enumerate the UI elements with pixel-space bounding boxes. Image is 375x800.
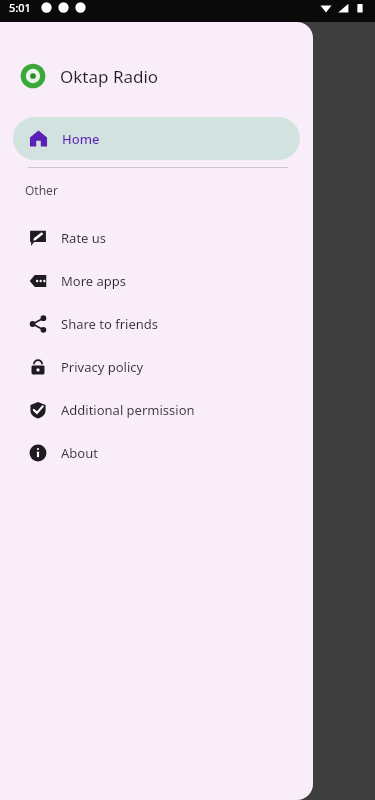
staticText: Oktap Radio <box>60 65 159 88</box>
button[interactable]: Privacy policy <box>0 345 313 388</box>
staticText: Home <box>62 130 100 148</box>
button[interactable]: About <box>0 431 313 474</box>
button[interactable]: Additional permission <box>0 388 313 431</box>
staticText: 5:01 <box>9 0 31 15</box>
staticText: Privacy policy <box>61 358 144 376</box>
button[interactable]: Home <box>13 117 300 160</box>
staticText: Share to friends <box>61 315 159 333</box>
staticText: More apps <box>61 272 126 290</box>
staticText: Rate us <box>61 229 107 247</box>
staticText: Additional permission <box>61 401 195 419</box>
staticText: About <box>61 444 98 462</box>
staticText: Other <box>25 182 58 198</box>
button[interactable]: Share to friends <box>0 302 313 345</box>
button[interactable]: More apps <box>0 259 313 302</box>
button[interactable]: Rate us <box>0 216 313 259</box>
